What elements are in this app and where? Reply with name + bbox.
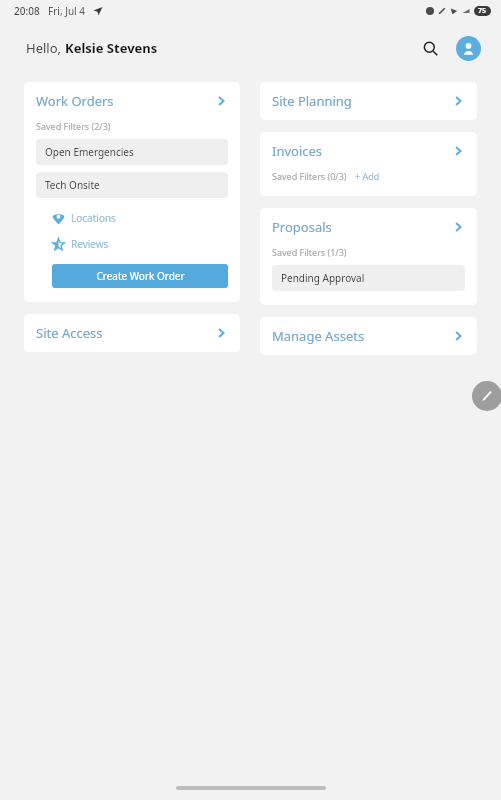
staticText: Kelsie Stevens [65,39,158,57]
button[interactable]: Edit [472,381,501,411]
button[interactable]: Locations [36,210,120,226]
staticText: Locations [71,211,116,225]
staticText: Manage Assets [272,327,451,345]
button[interactable]: Create Work Order [52,264,228,288]
button[interactable]: Open Emergencies [36,139,228,165]
staticText: 75 [478,6,487,16]
staticText: Create Work Order [96,269,185,283]
staticText: Fri, Jul 4 [48,4,85,18]
button[interactable]: Invoices [260,132,477,196]
button[interactable]: Tech Onsite [36,172,228,198]
staticText: Hello, [26,39,65,57]
staticText: 20:08 [14,4,40,18]
button[interactable]: Pending Approval [272,265,465,291]
staticText: Reviews [71,237,109,251]
button[interactable]: Site Planning [260,82,477,120]
button[interactable]: Proposals [260,208,477,305]
staticText: + Add [355,170,380,182]
staticText: Saved Filters (0/3) [272,170,347,182]
staticText: Saved Filters (2/3) [36,120,111,132]
button[interactable]: Reviews [36,236,113,252]
staticText: Pending Approval [281,271,365,285]
staticText: Proposals [272,218,451,236]
staticText: Open Emergencies [45,145,134,159]
button[interactable]: Profile [456,36,481,61]
staticText: Work Orders [36,92,214,110]
button[interactable]: Site Access [24,314,240,352]
button[interactable]: Manage Assets [260,317,477,355]
button[interactable]: Work Orders [24,82,240,302]
staticText: Tech Onsite [45,178,100,192]
staticText: Invoices [272,142,451,160]
staticText: Site Access [36,324,214,342]
staticText: Site Planning [272,92,451,110]
button[interactable]: + Add [355,170,380,182]
staticText: Saved Filters (1/3) [272,246,347,258]
button[interactable]: Search [416,34,444,62]
